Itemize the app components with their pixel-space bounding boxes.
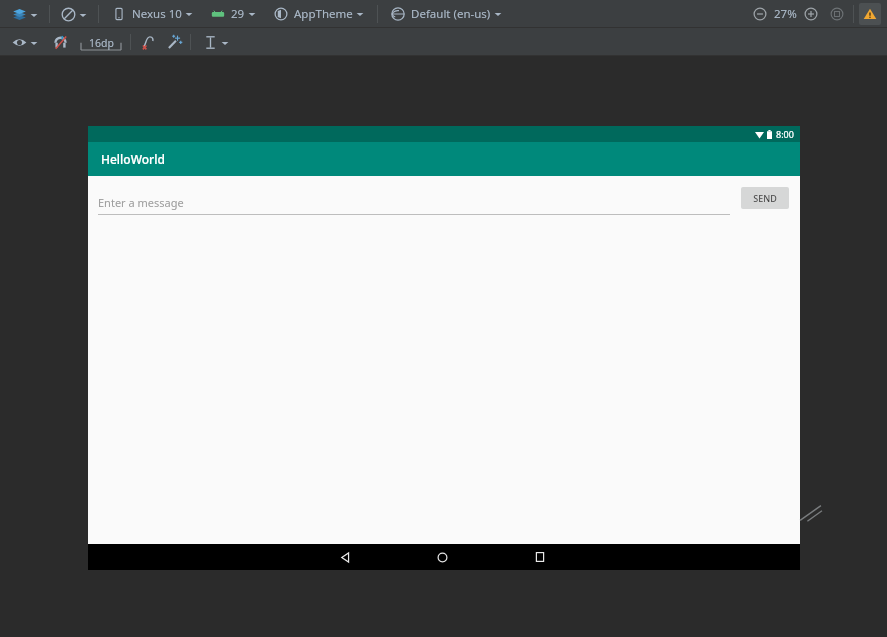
- button[interactable]: SEND: [741, 187, 789, 209]
- button[interactable]: AppTheme: [268, 3, 370, 25]
- button[interactable]: HelloWorld: [88, 142, 800, 176]
- staticText: 29: [231, 6, 245, 22]
- button[interactable]: Clear all constraints: [138, 32, 158, 52]
- button[interactable]: Guidelines: [199, 32, 233, 53]
- staticText: Default (en-us): [411, 6, 491, 22]
- staticText: Nexus 10: [132, 6, 182, 22]
- staticText: 27%: [774, 6, 797, 22]
- staticText: HelloWorld: [101, 151, 165, 167]
- staticText: SEND: [753, 192, 777, 204]
- button[interactable]: Warnings: [859, 3, 881, 25]
- button[interactable]: Turn off autoconnect: [50, 32, 70, 52]
- button[interactable]: Home: [422, 544, 462, 570]
- button[interactable]: Orientation and device configuration: [57, 4, 91, 25]
- button[interactable]: Zoom to fit screen: [827, 4, 847, 24]
- button[interactable]: Back: [325, 544, 365, 570]
- button[interactable]: Show constraints and margins: [8, 32, 42, 53]
- button[interactable]: Default (en-us): [385, 3, 508, 25]
- staticText: 16dp: [89, 36, 114, 50]
- button[interactable]: Enter a message: [98, 189, 730, 215]
- button[interactable]: 29: [205, 3, 262, 25]
- staticText: 8:00: [776, 128, 794, 140]
- staticText: Enter a message: [98, 195, 184, 210]
- button[interactable]: Infer constraints: [164, 32, 184, 52]
- staticText: AppTheme: [294, 6, 353, 22]
- button[interactable]: Design surface layers: [8, 4, 42, 25]
- button[interactable]: 16dp: [78, 34, 124, 51]
- button[interactable]: Recent apps: [520, 544, 560, 570]
- button[interactable]: Nexus 10: [106, 3, 199, 25]
- button[interactable]: Zoom in: [801, 4, 821, 24]
- button[interactable]: Zoom out: [750, 4, 770, 24]
